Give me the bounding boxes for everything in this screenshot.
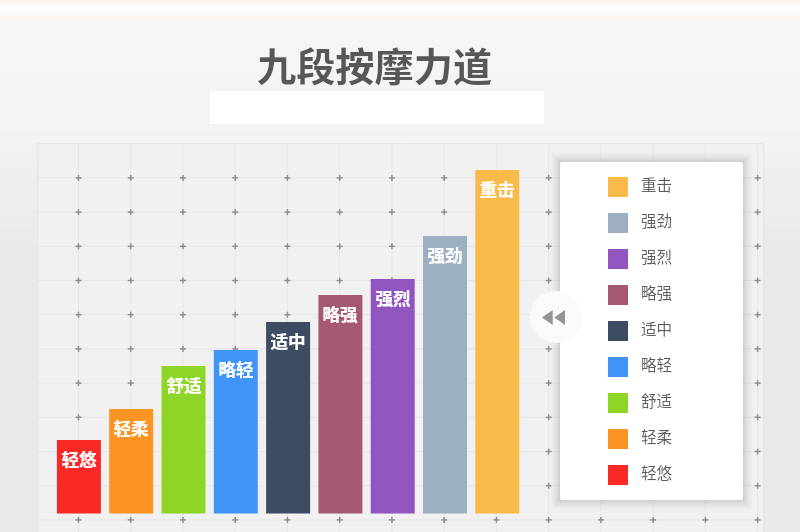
staticText: 重击	[641, 173, 673, 196]
staticText: 略强	[641, 281, 673, 304]
staticText: 重击	[475, 176, 519, 201]
staticText: 舒适	[641, 389, 673, 412]
staticText: 轻悠	[641, 461, 673, 484]
staticText: 轻柔	[641, 425, 673, 448]
button[interactable]: 强劲	[560, 205, 743, 241]
staticText: 九段按摩力道	[257, 36, 493, 93]
staticText: 舒适	[162, 372, 206, 397]
button[interactable]: 适中	[560, 313, 743, 349]
staticText: 略轻	[214, 356, 258, 381]
button[interactable]: Collapse legend	[530, 291, 582, 343]
staticText: 轻悠	[57, 446, 101, 471]
staticText: 适中	[641, 317, 673, 340]
staticText: 略强	[318, 301, 362, 326]
button[interactable]: 轻悠	[560, 457, 743, 493]
staticText: 强劲	[423, 242, 467, 267]
staticText: 强烈	[641, 245, 673, 268]
button[interactable]: 略轻	[560, 349, 743, 385]
staticText: 适中	[266, 328, 310, 353]
staticText: 强烈	[371, 285, 415, 310]
staticText: 轻柔	[109, 415, 153, 440]
button[interactable]: 略强	[560, 277, 743, 313]
button[interactable]: 舒适	[560, 385, 743, 421]
staticText: 强劲	[641, 209, 673, 232]
button[interactable]: 强烈	[560, 241, 743, 277]
staticText: 略轻	[641, 353, 673, 376]
button[interactable]: 轻柔	[560, 421, 743, 457]
button[interactable]: 重击	[560, 169, 743, 205]
